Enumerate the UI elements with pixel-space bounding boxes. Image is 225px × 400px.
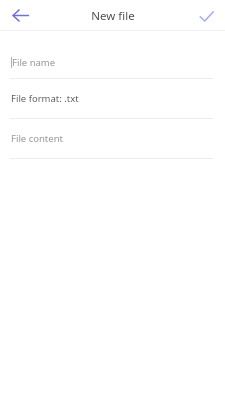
button[interactable]: File name	[0, 47, 225, 79]
staticText: File name	[12, 56, 56, 69]
staticText: File format: .txt	[11, 92, 79, 105]
button[interactable]: Save	[191, 1, 221, 31]
staticText: File content	[11, 132, 63, 145]
button[interactable]: File content	[0, 119, 225, 159]
button[interactable]: Back	[4, 0, 36, 31]
button[interactable]: File format: .txt	[0, 79, 225, 119]
staticText: New file	[91, 8, 135, 24]
